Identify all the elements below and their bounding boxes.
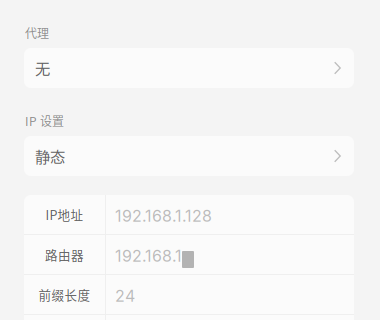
staticText: 192.168.1.128 <box>115 206 212 226</box>
staticText: 代理 <box>25 24 49 41</box>
staticText: IP地址 <box>45 205 83 223</box>
button[interactable]: 路由器 <box>24 235 354 274</box>
staticText: 192.168.1 <box>115 246 182 266</box>
staticText: 静态 <box>35 145 65 167</box>
staticText: 路由器 <box>45 245 84 263</box>
button[interactable]: IP地址 <box>24 195 354 234</box>
button[interactable]: 前缀长度 <box>24 275 354 314</box>
staticText: 无 <box>35 57 50 79</box>
staticText: 24 <box>115 286 135 306</box>
button[interactable]: 代理 <box>24 48 354 88</box>
staticText: 前缀长度 <box>38 285 90 303</box>
button[interactable]: IP 设置 <box>24 136 354 176</box>
staticText: IP 设置 <box>25 112 64 129</box>
